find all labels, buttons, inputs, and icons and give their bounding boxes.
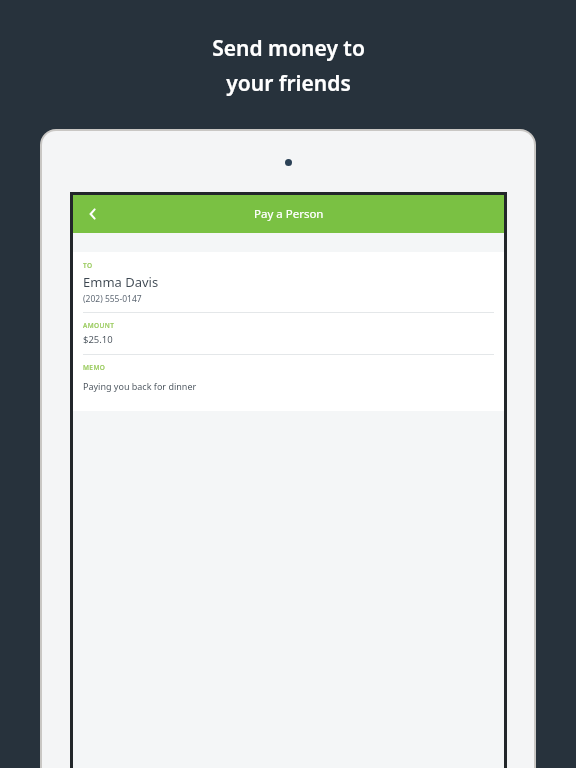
staticText: $25.10 xyxy=(83,333,113,346)
button[interactable]: TO xyxy=(73,252,504,312)
button[interactable]: AMOUNT xyxy=(73,313,504,354)
staticText: Paying you back for dinner xyxy=(83,380,197,392)
staticText: Pay a Person xyxy=(254,206,324,222)
staticText: Emma Davis xyxy=(83,273,159,291)
staticText: (202) 555-0147 xyxy=(83,293,142,305)
staticText: TO xyxy=(83,261,93,270)
button[interactable]: Back xyxy=(73,195,113,233)
staticText: AMOUNT xyxy=(83,321,115,330)
staticText: Send money to xyxy=(212,34,365,63)
staticText: MEMO xyxy=(83,363,106,372)
staticText: your friends xyxy=(226,69,351,98)
button[interactable]: MEMO xyxy=(73,355,504,411)
